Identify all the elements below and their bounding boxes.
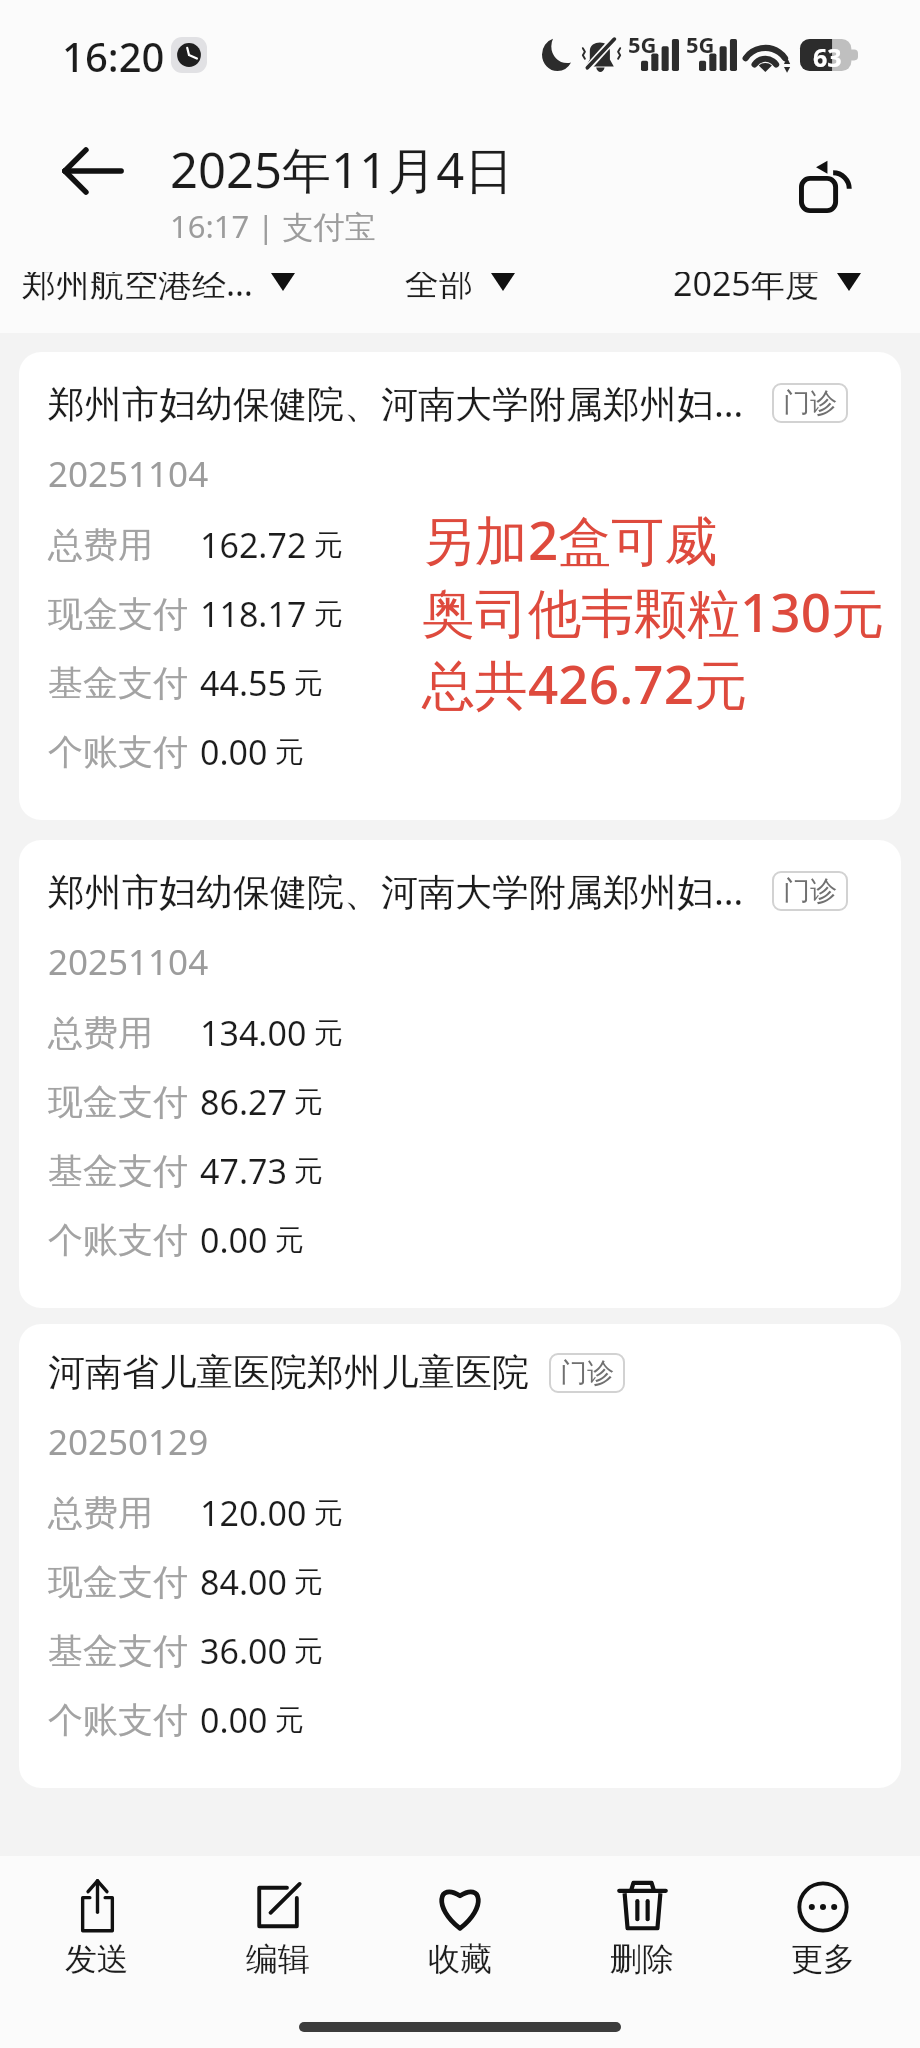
staticText: 5G (686, 29, 715, 59)
staticText: 现金支付 (48, 1080, 188, 1124)
staticText: 元 (294, 1564, 323, 1601)
staticText: 郑州市妇幼保健院、河南大学附属郑州妇… (48, 377, 744, 428)
staticText: 47.73 (200, 1148, 287, 1194)
button[interactable]: 郑州航空港经… (0, 248, 306, 318)
button[interactable]: 郑州市妇幼保健院、河南大学附属郑州妇… (19, 840, 901, 1308)
staticText: 删除 (610, 1939, 674, 1979)
staticText: 基金支付 (48, 1149, 188, 1193)
staticText: 基金支付 (48, 1629, 188, 1673)
staticText: 元 (275, 1702, 304, 1739)
button[interactable]: 更多 (738, 1856, 908, 1979)
staticText: 2025年度 (673, 260, 819, 306)
staticText: 编辑 (246, 1939, 310, 1979)
staticText: 20251104 (48, 938, 209, 986)
staticText: 郑州航空港经… (22, 260, 253, 306)
button[interactable]: Rotate (778, 139, 874, 235)
staticText: 16:17 | 支付宝 (170, 205, 376, 247)
staticText: 84.00 (200, 1559, 287, 1605)
staticText: 元 (275, 734, 304, 771)
staticText: 2025年11月4日 (170, 136, 514, 203)
staticText: 元 (314, 1015, 343, 1052)
staticText: 总费用 (48, 1011, 153, 1055)
staticText: 河南省儿童医院郑州儿童医院 (48, 1349, 529, 1396)
staticText: 总共426.72元 (422, 647, 747, 719)
staticText: 118.17 (200, 591, 307, 637)
staticText: 44.55 (200, 660, 287, 706)
staticText: 元 (294, 665, 323, 702)
staticText: 0.00 (200, 1217, 268, 1263)
button[interactable]: 2025年度 (613, 248, 920, 318)
staticText: 收藏 (428, 1939, 492, 1979)
button[interactable]: 收藏 (375, 1856, 545, 1979)
staticText: 个账支付 (48, 730, 188, 774)
staticText: 5G (628, 29, 657, 59)
staticText: 元 (314, 596, 343, 633)
staticText: 20251104 (48, 450, 209, 498)
button[interactable]: 郑州市妇幼保健院、河南大学附属郑州妇… (19, 352, 901, 820)
staticText: 奥司他韦颗粒130元 (422, 575, 884, 647)
staticText: 总费用 (48, 1491, 153, 1535)
staticText: 134.00 (200, 1010, 307, 1056)
button[interactable]: 河南省儿童医院郑州儿童医院 (19, 1324, 901, 1788)
button[interactable]: 发送 (12, 1856, 182, 1979)
staticText: 个账支付 (48, 1698, 188, 1742)
staticText: 86.27 (200, 1079, 287, 1125)
staticText: 发送 (65, 1939, 129, 1979)
staticText: 120.00 (200, 1490, 307, 1536)
staticText: 总费用 (48, 523, 153, 567)
button[interactable]: 编辑 (193, 1856, 363, 1979)
staticText: 元 (314, 1495, 343, 1532)
staticText: 现金支付 (48, 1560, 188, 1604)
staticText: 162.72 (200, 522, 307, 568)
staticText: 更多 (791, 1939, 855, 1979)
button[interactable]: 删除 (557, 1856, 727, 1979)
staticText: 20250129 (48, 1418, 209, 1466)
staticText: 全部 (405, 262, 473, 305)
staticText: 另加2盒可威 (422, 503, 718, 575)
staticText: 63 (813, 40, 842, 72)
button[interactable]: Back (49, 127, 137, 215)
staticText: 门诊 (783, 874, 837, 908)
staticText: 郑州市妇幼保健院、河南大学附属郑州妇… (48, 865, 744, 916)
staticText: 16:20 (62, 29, 165, 83)
staticText: 基金支付 (48, 661, 188, 705)
staticText: 现金支付 (48, 592, 188, 636)
button[interactable]: 全部 (306, 248, 613, 318)
staticText: 36.00 (200, 1628, 287, 1674)
staticText: 0.00 (200, 1697, 268, 1743)
staticText: 个账支付 (48, 1218, 188, 1262)
staticText: 元 (275, 1222, 304, 1259)
staticText: 元 (294, 1084, 323, 1121)
staticText: 元 (294, 1633, 323, 1670)
staticText: 元 (314, 527, 343, 564)
staticText: 0.00 (200, 729, 268, 775)
staticText: 门诊 (560, 1356, 614, 1390)
staticText: 元 (294, 1153, 323, 1190)
staticText: 门诊 (783, 386, 837, 420)
